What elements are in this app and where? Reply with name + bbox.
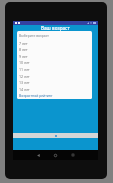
- button[interactable]: Home: [52, 152, 58, 158]
- staticText: 11 лет: [19, 67, 30, 72]
- button[interactable]: 7 лет: [17, 40, 92, 47]
- staticText: 7 лет: [19, 41, 28, 46]
- staticText: 14 лет: [19, 87, 30, 92]
- button[interactable]: Back: [35, 152, 41, 158]
- button[interactable]: 9 лет: [17, 53, 92, 60]
- staticText: Ваш возраст: [41, 25, 70, 31]
- staticText: Возрастной рейтинг: [19, 93, 53, 98]
- button[interactable]: 13 лет: [17, 79, 92, 86]
- staticText: 10 лет: [19, 60, 30, 65]
- staticText: 12 лет: [19, 74, 30, 79]
- button[interactable]: 11 лет: [17, 66, 92, 73]
- button[interactable]: 14 лет: [17, 86, 92, 93]
- staticText: 8 лет: [19, 47, 28, 52]
- staticText: 13 лет: [19, 80, 30, 85]
- staticText: Выберите возраст: [19, 33, 49, 38]
- staticText: 9 лет: [19, 54, 28, 59]
- button[interactable]: 10 лет: [17, 59, 92, 66]
- button[interactable]: Recents: [70, 152, 76, 158]
- button[interactable]: 8 лет: [17, 46, 92, 53]
- button[interactable]: 12 лет: [17, 73, 92, 80]
